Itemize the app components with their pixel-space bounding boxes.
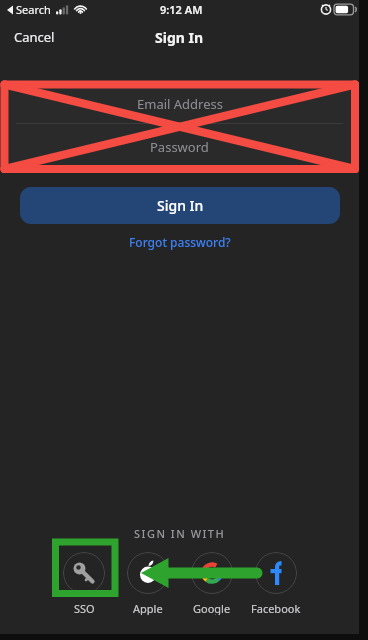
- staticText: SSO: [74, 601, 95, 615]
- button[interactable]: Password: [0, 138, 359, 156]
- staticText: Forgot password?: [129, 234, 231, 250]
- staticText: Cancel: [14, 28, 55, 46]
- staticText: Email Address: [137, 95, 223, 113]
- button[interactable]: [191, 552, 233, 594]
- staticText: Sign In: [157, 196, 204, 215]
- staticText: 9:12 AM: [160, 2, 203, 17]
- button[interactable]: [127, 552, 169, 594]
- staticText: Facebook: [251, 601, 301, 615]
- staticText: SIGN IN WITH: [134, 526, 226, 541]
- button[interactable]: Cancel: [14, 28, 55, 46]
- staticText: Sign In: [155, 28, 204, 47]
- button[interactable]: Email Address: [0, 95, 359, 113]
- staticText: Password: [150, 138, 209, 156]
- button[interactable]: [63, 552, 105, 594]
- button[interactable]: Forgot password?: [129, 234, 231, 250]
- staticText: Google: [193, 601, 231, 615]
- staticText: Apple: [133, 601, 163, 615]
- button[interactable]: [255, 552, 297, 594]
- button[interactable]: Sign In: [20, 187, 340, 224]
- staticText: Search: [16, 2, 51, 17]
